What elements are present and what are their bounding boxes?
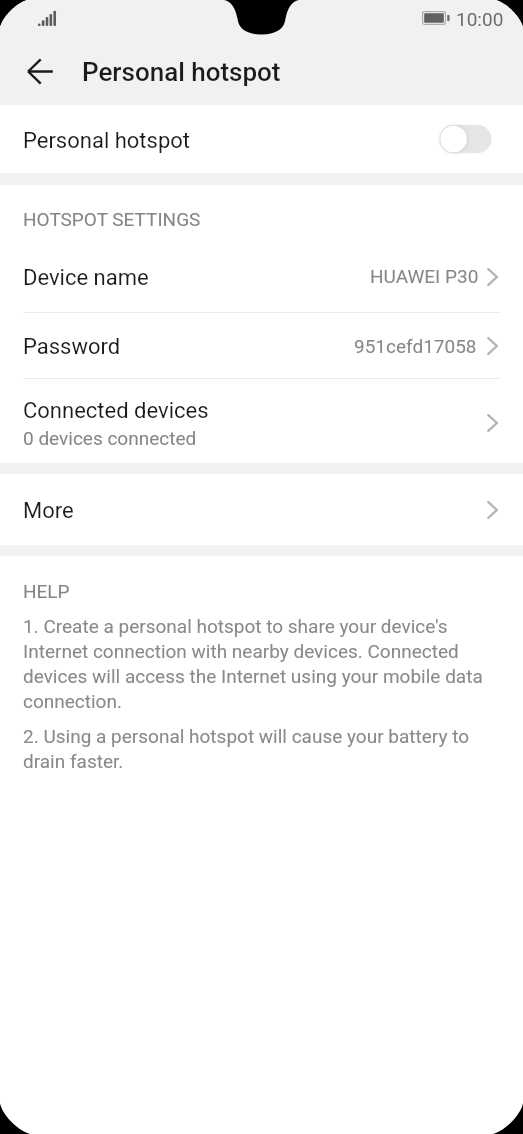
button[interactable] xyxy=(0,312,523,378)
staticText: 2. Using a personal hotspot will cause y… xyxy=(23,725,501,772)
button[interactable] xyxy=(0,105,523,173)
staticText: Connected devices xyxy=(23,398,209,424)
button[interactable]: Back xyxy=(16,47,64,95)
button[interactable] xyxy=(0,378,523,463)
staticText: HOTSPOT SETTINGS xyxy=(23,208,201,230)
staticText: More xyxy=(23,498,74,524)
staticText: 951cefd17058 xyxy=(354,335,477,357)
staticText: Password xyxy=(23,334,121,360)
staticText: 1. Create a personal hotspot to share yo… xyxy=(23,615,501,712)
button[interactable] xyxy=(0,243,523,312)
staticText: HUAWEI P30 xyxy=(370,265,479,287)
button[interactable]: Personal hotspot switch xyxy=(439,124,492,154)
staticText: Personal hotspot xyxy=(23,128,190,154)
staticText: HELP xyxy=(23,580,70,602)
staticText: 0 devices connected xyxy=(23,427,197,449)
staticText: 10:00 xyxy=(456,8,504,30)
staticText: Device name xyxy=(23,265,149,291)
staticText: Personal hotspot xyxy=(82,57,281,87)
button[interactable] xyxy=(0,474,523,545)
